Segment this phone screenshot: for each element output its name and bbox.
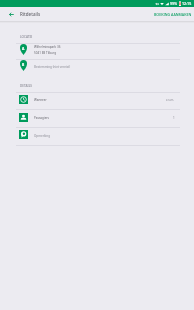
- staticText: Wilhelminapark 36: [34, 45, 61, 49]
- button[interactable]: [16, 44, 180, 59]
- staticText: Passagiers: [34, 116, 50, 120]
- staticText: Opmerking: [34, 134, 50, 138]
- staticText: Bestemming (niet vereist): [34, 65, 71, 69]
- button[interactable]: Back: [0, 7, 20, 22]
- staticText: B: [22, 62, 25, 67]
- button[interactable]: [16, 128, 180, 145]
- staticText: 12:15: [182, 1, 192, 6]
- staticText: BOEKING AANMAKEN: [154, 12, 192, 17]
- staticText: 1: [173, 116, 175, 120]
- staticText: LOCATIE: [20, 35, 33, 39]
- staticText: DETAILS: [20, 84, 32, 88]
- button[interactable]: [16, 60, 180, 76]
- staticText: 5041 EB Tilburg: [34, 51, 57, 55]
- staticText: Ritdetails: [20, 11, 41, 17]
- button[interactable]: [16, 110, 180, 127]
- staticText: 99%: [170, 1, 178, 6]
- staticText: z.s.m.: [166, 98, 175, 102]
- staticText: A: [22, 46, 25, 51]
- button[interactable]: [16, 93, 180, 109]
- staticText: Wanneer: [34, 98, 47, 102]
- button[interactable]: BOEKING AANMAKEN: [150, 7, 194, 22]
